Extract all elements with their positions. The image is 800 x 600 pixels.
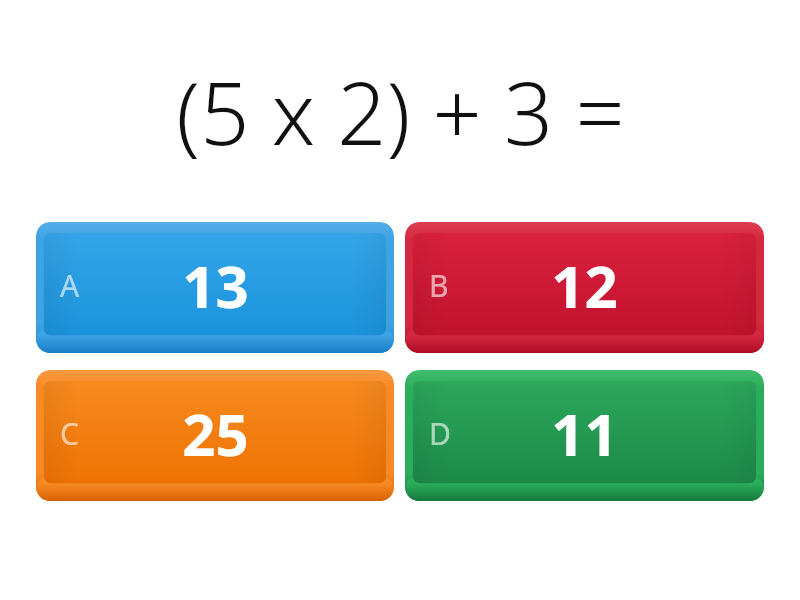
staticText: 12 — [551, 246, 618, 325]
staticText: B — [429, 265, 449, 306]
staticText: (5 x 2) + 3 = — [176, 53, 625, 170]
staticText: 25 — [182, 394, 249, 473]
button[interactable]: C — [36, 370, 394, 501]
staticText: A — [60, 265, 80, 306]
button[interactable]: D — [405, 370, 764, 501]
staticText: C — [60, 413, 79, 454]
button[interactable]: B — [405, 222, 764, 353]
staticText: 13 — [182, 246, 249, 325]
staticText: D — [429, 413, 451, 454]
button[interactable]: A — [36, 222, 394, 353]
staticText: 11 — [551, 394, 618, 473]
